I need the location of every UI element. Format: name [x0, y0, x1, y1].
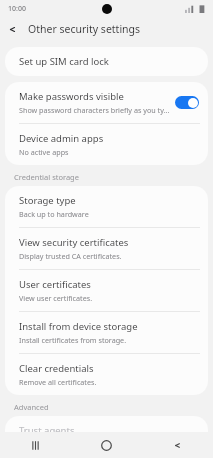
- staticText: Make passwords visible: [19, 90, 124, 103]
- staticText: Install from device storage: [19, 320, 138, 333]
- staticText: Back up to hardware: [19, 209, 89, 219]
- staticText: Clear credentials: [19, 362, 94, 375]
- button[interactable]: Toggle: [175, 96, 199, 109]
- button[interactable]: Make passwords visible: [5, 82, 208, 123]
- staticText: Advanced: [14, 402, 49, 412]
- staticText: Device admin apps: [19, 132, 104, 145]
- button[interactable]: View security certificates: [5, 228, 208, 269]
- button[interactable]: Install from device storage: [5, 312, 208, 353]
- button[interactable]: Back: [0, 17, 24, 41]
- staticText: 10:00: [8, 4, 26, 14]
- staticText: View security certificates: [19, 236, 129, 249]
- staticText: Remove all certificates.: [19, 377, 97, 387]
- staticText: Install certificates from storage.: [19, 335, 127, 345]
- staticText: Show password characters briefly as you …: [19, 105, 171, 115]
- button[interactable]: User certificates: [5, 270, 208, 311]
- button[interactable]: Home: [71, 432, 142, 458]
- staticText: Display trusted CA certificates.: [19, 251, 122, 261]
- button[interactable]: Trust agents: [5, 416, 208, 432]
- staticText: No active apps: [19, 147, 69, 157]
- staticText: View user certificates.: [19, 293, 93, 303]
- staticText: Other security settings: [28, 22, 141, 36]
- staticText: Storage type: [19, 194, 76, 207]
- button[interactable]: Device admin apps: [5, 124, 208, 165]
- staticText: Trust agents: [19, 424, 75, 432]
- button[interactable]: Storage type: [5, 186, 208, 227]
- button[interactable]: Set up SIM card lock: [5, 47, 208, 76]
- staticText: User certificates: [19, 278, 91, 291]
- staticText: Credential storage: [14, 172, 79, 182]
- button[interactable]: Back: [142, 432, 213, 458]
- button[interactable]: Clear credentials: [5, 354, 208, 395]
- button[interactable]: Recent apps: [0, 432, 71, 458]
- staticText: Set up SIM card lock: [19, 55, 109, 68]
